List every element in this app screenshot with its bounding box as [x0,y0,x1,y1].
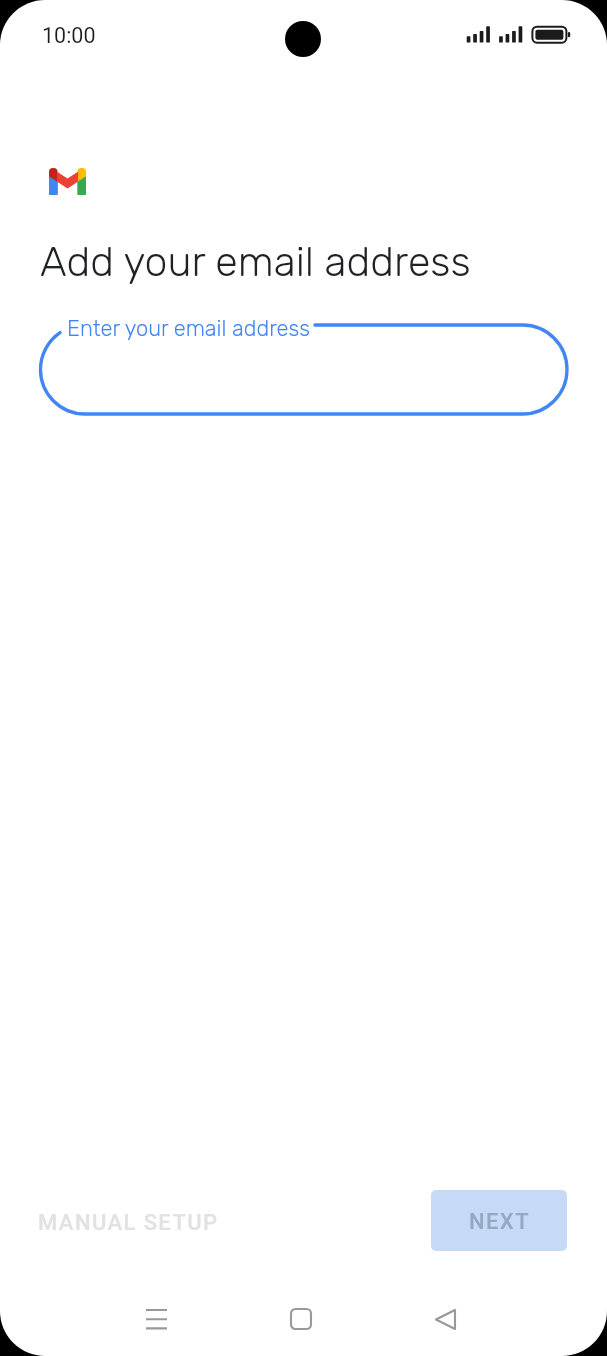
button[interactable]: MANUAL SETUP [28,1195,228,1251]
button[interactable]: Home [265,1283,337,1355]
button[interactable]: NEXT [431,1190,567,1251]
staticText: Add your email address [40,238,471,287]
staticText: 10:00 [42,23,96,48]
button[interactable]: Enter your email address [40,325,567,414]
staticText: Enter your email address [67,316,311,342]
staticText: MANUAL SETUP [38,1210,219,1236]
button[interactable]: Recent apps [120,1283,192,1355]
button[interactable]: Back [409,1283,481,1355]
staticText: NEXT [469,1209,530,1235]
